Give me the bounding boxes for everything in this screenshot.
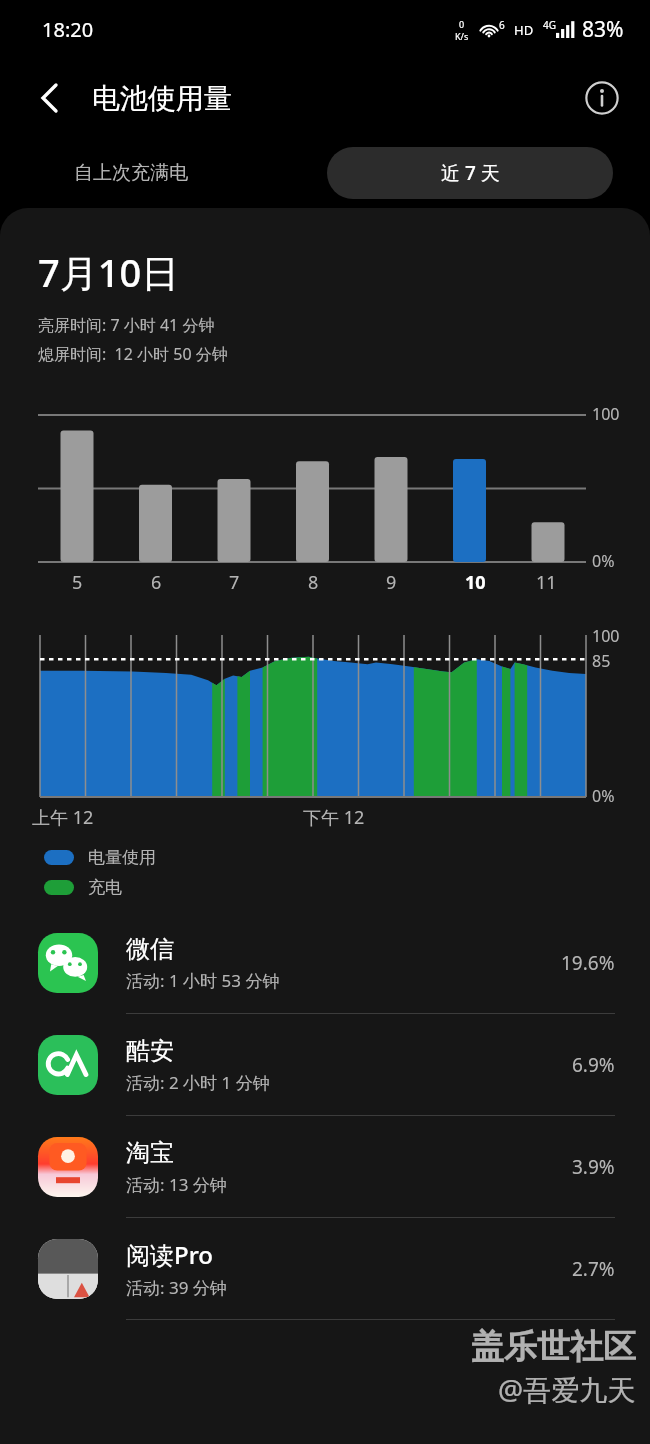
staticText: 阅读Pro [126, 1238, 213, 1271]
staticText: 下午 12 [303, 805, 365, 830]
staticText: 85 [592, 650, 611, 672]
staticText: HD [514, 21, 534, 39]
staticText: 淘宝 [126, 1138, 174, 1168]
staticText: 4G [543, 18, 556, 32]
staticText: 7 [229, 570, 240, 595]
staticText: 微信 [126, 934, 174, 964]
staticText: 0 [459, 18, 465, 30]
staticText: 5 [72, 570, 83, 595]
staticText: 18:20 [42, 16, 94, 43]
staticText: 6.9% [572, 1052, 615, 1078]
staticText: 亮屏时间: 7 小时 41 分钟 [38, 314, 215, 336]
button[interactable]: 自上次充满电 [30, 147, 232, 199]
staticText: 近 7 天 [441, 160, 500, 186]
staticText: 0% [592, 785, 615, 807]
staticText: 6 [151, 570, 162, 595]
staticText: 盖乐世社区 [471, 1326, 636, 1368]
staticText: K/s [455, 30, 469, 42]
staticText: 8 [308, 570, 319, 595]
button[interactable]: Back [26, 75, 72, 121]
staticText: 电池使用量 [92, 81, 232, 116]
staticText: 19.6% [561, 950, 615, 976]
staticText: 熄屏时间: 12 小时 50 分钟 [38, 343, 228, 365]
staticText: 6 [499, 18, 505, 32]
staticText: 活动: 2 小时 1 分钟 [126, 1071, 270, 1094]
staticText: 100 [592, 403, 620, 425]
staticText: 充电 [88, 877, 122, 898]
staticText: 7月10日 [38, 246, 180, 298]
staticText: @吾爱九天 [498, 1370, 636, 1408]
staticText: 电量使用 [88, 847, 156, 868]
staticText: 自上次充满电 [74, 161, 188, 185]
button[interactable]: 酷安 [0, 1014, 650, 1116]
staticText: 83% [582, 15, 624, 44]
staticText: 酷安 [126, 1036, 174, 1066]
button[interactable]: 淘宝 [0, 1116, 650, 1218]
staticText: 100 [592, 625, 620, 647]
button[interactable]: 阅读Pro [0, 1218, 650, 1320]
button[interactable]: Information [578, 74, 626, 122]
staticText: 0% [592, 550, 615, 572]
staticText: 活动: 13 分钟 [126, 1173, 227, 1196]
staticText: 3.9% [572, 1154, 615, 1180]
staticText: 2.7% [572, 1256, 615, 1282]
staticText: 10 [465, 570, 486, 595]
staticText: 9 [386, 570, 397, 595]
staticText: 上午 12 [32, 805, 94, 830]
staticText: 11 [536, 570, 557, 595]
button[interactable]: 微信 [0, 912, 650, 1014]
button[interactable]: 近 7 天 [327, 147, 613, 199]
staticText: 活动: 1 小时 53 分钟 [126, 969, 280, 992]
staticText: 活动: 39 分钟 [126, 1276, 227, 1299]
